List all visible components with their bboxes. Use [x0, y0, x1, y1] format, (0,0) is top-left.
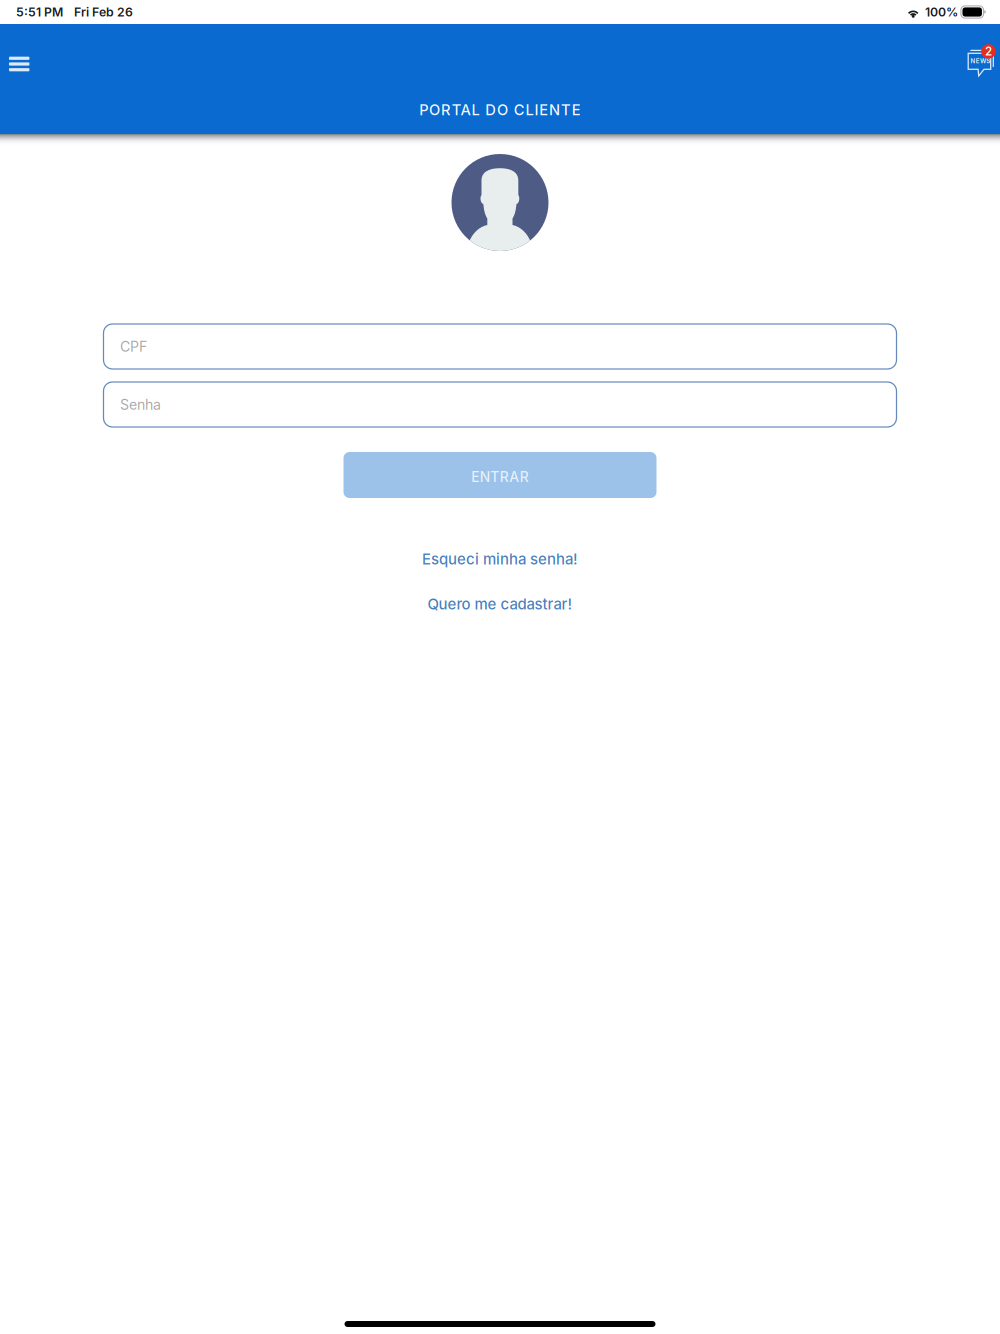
- staticText: ENTRAR: [471, 469, 529, 485]
- staticText: PORTAL DO CLIENTE: [419, 101, 581, 119]
- staticText: 5:51 PM: [16, 5, 63, 19]
- staticText: Quero me cadastrar!: [427, 595, 572, 613]
- button[interactable]: Menu: [0, 24, 44, 68]
- button[interactable]: Esqueci minha senha!: [350, 549, 650, 569]
- button[interactable]: CPF: [103, 324, 896, 369]
- staticText: Senha: [120, 396, 161, 413]
- button[interactable]: Senha: [103, 382, 896, 427]
- staticText: Esqueci minha senha!: [422, 550, 578, 568]
- button[interactable]: News: [0, 24, 40, 64]
- staticText: CPF: [120, 338, 147, 355]
- staticText: Fri Feb 26: [74, 5, 133, 19]
- button[interactable]: Quero me cadastrar!: [350, 594, 650, 614]
- button[interactable]: ENTRAR: [343, 452, 656, 498]
- staticText: 100%: [925, 5, 958, 19]
- staticText: 2: [985, 44, 992, 58]
- staticText: NEWS: [970, 57, 990, 65]
